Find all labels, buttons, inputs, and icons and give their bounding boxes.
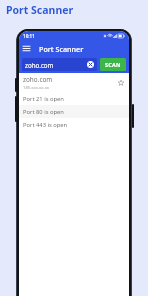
button[interactable]: Open navigation menu: [19, 41, 34, 56]
button[interactable]: Port 21 is open: [19, 92, 129, 105]
staticText: 10:11: [23, 33, 35, 39]
button[interactable]: SCAN: [100, 58, 126, 71]
staticText: Port Scanner: [39, 44, 84, 54]
staticText: Port 21 is open: [23, 95, 64, 103]
button[interactable]: zoho.com: [19, 73, 129, 92]
staticText: 185.xxx.xx.xx: [23, 85, 50, 91]
button[interactable]: Port 443 is open: [19, 118, 129, 131]
staticText: Port 80 is open: [23, 108, 64, 116]
staticText: Port 443 is open: [23, 121, 68, 129]
button[interactable]: Clear text: [87, 61, 94, 68]
button[interactable]: zoho.com: [22, 58, 97, 71]
button[interactable]: Port 80 is open: [19, 105, 129, 118]
staticText: zoho.com: [23, 75, 53, 84]
staticText: Port Scanner: [6, 3, 74, 17]
staticText: zoho.com: [25, 61, 87, 69]
button[interactable]: Add to favourites: [116, 78, 125, 87]
staticText: SCAN: [105, 61, 121, 68]
